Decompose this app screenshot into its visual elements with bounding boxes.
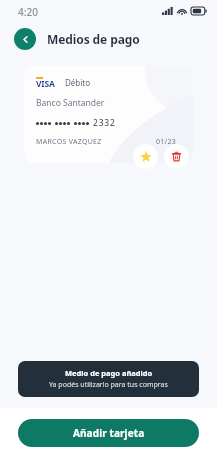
staticText: Banco Santander bbox=[36, 97, 105, 109]
staticText: Añadir tarjeta bbox=[73, 426, 145, 440]
staticText: Ya podés utilizarlo para tus compras bbox=[49, 380, 168, 390]
button[interactable]: VISA bbox=[24, 66, 193, 163]
button[interactable]: Medio de pago añadido bbox=[18, 361, 199, 397]
button[interactable]: Añadir tarjeta bbox=[18, 419, 199, 447]
button[interactable]: Back bbox=[14, 28, 36, 50]
staticText: VISA bbox=[36, 78, 55, 89]
staticText: 2332 bbox=[93, 117, 116, 129]
staticText: Medios de pago bbox=[47, 31, 140, 47]
button[interactable]: Delete bbox=[164, 144, 189, 169]
staticText: 01/23 bbox=[156, 137, 177, 147]
staticText: Débito bbox=[65, 77, 91, 88]
button[interactable]: Favorite bbox=[133, 144, 158, 169]
staticText: 4:20 bbox=[18, 5, 38, 19]
staticText: MARCOS VAZQUEZ bbox=[36, 137, 102, 147]
staticText: Medio de pago añadido bbox=[65, 368, 153, 378]
